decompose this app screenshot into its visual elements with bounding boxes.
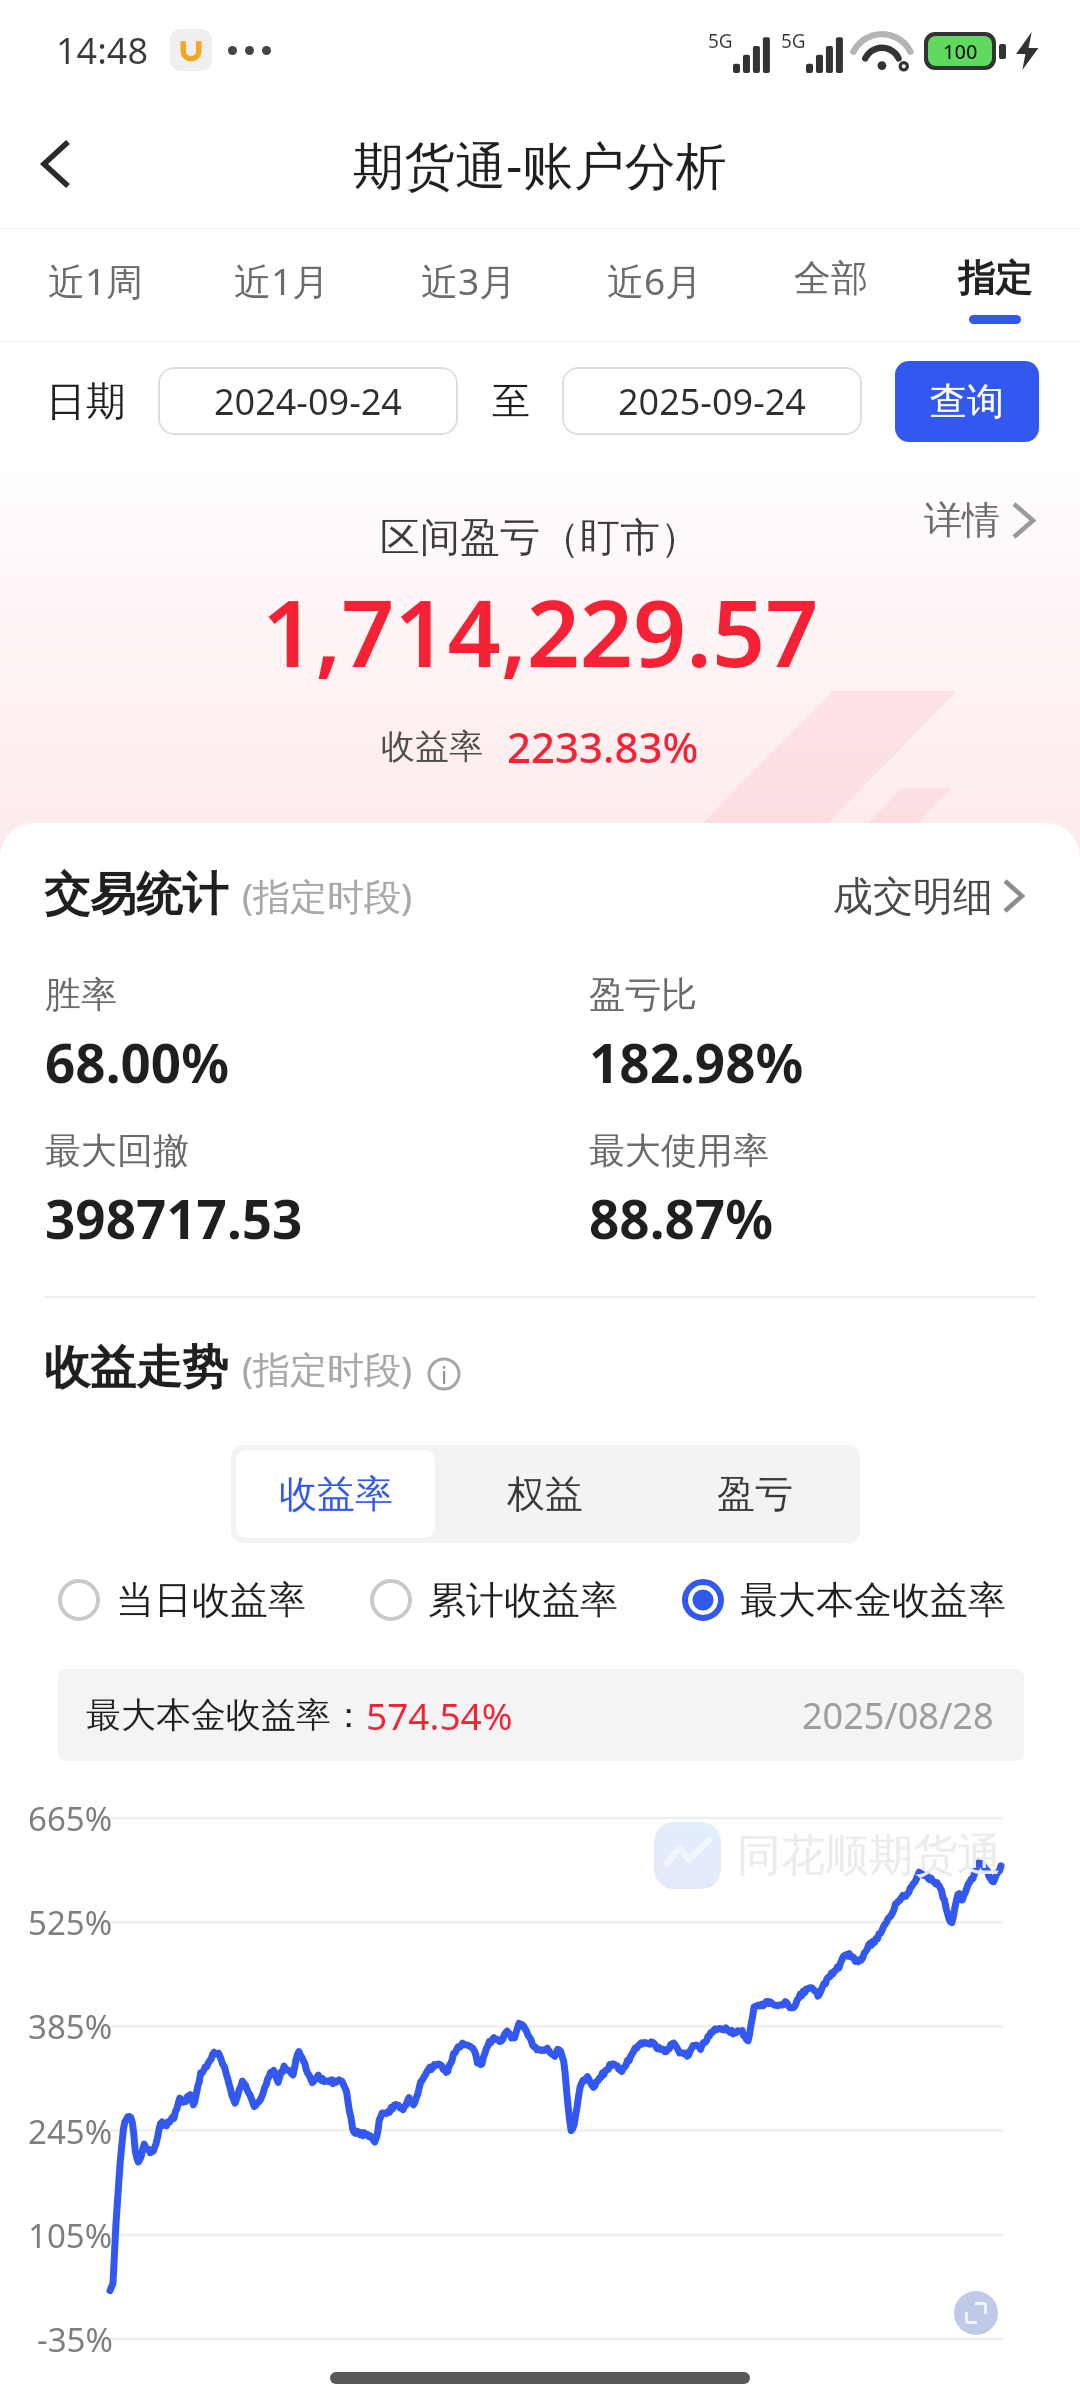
staticText: 权益 [507, 1470, 583, 1518]
staticText: 2025-09-24 [618, 377, 806, 426]
button[interactable]: 权益 [445, 1450, 645, 1538]
staticText: 2024-09-24 [214, 377, 402, 426]
staticText: 查询 [930, 378, 1004, 425]
staticText: 100 [943, 38, 978, 65]
staticText: 5G [781, 28, 806, 54]
staticText: 105% [28, 2213, 113, 2258]
staticText: 收益率 [381, 725, 483, 768]
button[interactable]: 近1周 [48, 229, 144, 341]
button[interactable]: 查询 [895, 361, 1039, 442]
button[interactable]: 最大本金收益率 [682, 1576, 1006, 1624]
staticText: 最大本金收益率： [86, 1693, 366, 1737]
staticText: 5G [708, 28, 733, 54]
staticText: 2233.83% [507, 718, 699, 775]
staticText: 盈亏 [717, 1470, 793, 1518]
staticText: 近1周 [48, 255, 144, 306]
staticText: 近1月 [234, 255, 330, 306]
button[interactable]: 累计收益率 [370, 1576, 618, 1624]
button[interactable]: 收益率 [236, 1450, 435, 1538]
button[interactable]: 当日收益率 [58, 1576, 306, 1624]
staticText: 当日收益率 [116, 1576, 306, 1624]
staticText: 胜率 [45, 972, 117, 1017]
staticText: 期货通-账户分析 [353, 129, 727, 199]
staticText: 至 [492, 377, 530, 425]
button[interactable]: 2025-09-24 [562, 367, 862, 435]
button[interactable]: 成交明细 [821, 865, 1022, 924]
staticText: 525% [28, 1900, 113, 1945]
staticText: 最大本金收益率 [740, 1576, 1006, 1624]
staticText: 指定 [958, 255, 1032, 302]
staticText: 收益率 [279, 1470, 393, 1518]
button[interactable]: Fullscreen [954, 2291, 998, 2335]
button[interactable]: 2024-09-24 [158, 367, 458, 435]
staticText: 1,714,229.57 [262, 568, 819, 695]
staticText: 14:48 [56, 26, 149, 75]
staticText: 盈亏比 [589, 972, 697, 1017]
staticText: 近3月 [421, 255, 517, 306]
staticText: 2025/08/28 [802, 1691, 994, 1740]
staticText: 区间盈亏（盯市） [380, 512, 700, 562]
staticText: 近6月 [607, 255, 703, 306]
staticText: 收益走势 [44, 1339, 228, 1397]
staticText: 全部 [794, 255, 868, 302]
staticText: 182.98% [589, 1026, 804, 1098]
staticText: (指定时段) [242, 870, 413, 921]
staticText: 68.00% [45, 1026, 229, 1098]
staticText: 574.54% [366, 1690, 513, 1740]
button[interactable]: 近3月 [421, 229, 517, 341]
button[interactable]: 详情 [908, 480, 1049, 560]
button[interactable]: 近1月 [234, 229, 330, 341]
staticText: 交易统计 [44, 866, 228, 924]
staticText: 日期 [46, 376, 126, 426]
staticText: i [441, 1358, 448, 1391]
button[interactable]: 盈亏 [655, 1450, 855, 1538]
staticText: 245% [28, 2109, 113, 2154]
button[interactable]: 近6月 [607, 229, 703, 341]
staticText: 665% [28, 1796, 113, 1841]
staticText: 最大回撤 [45, 1128, 189, 1173]
staticText: -35% [37, 2317, 113, 2362]
staticText: 398717.53 [45, 1182, 303, 1254]
staticText: 最大使用率 [589, 1128, 769, 1173]
staticText: 详情 [924, 496, 1000, 544]
button[interactable]: 全部 [794, 229, 868, 341]
staticText: (指定时段) [242, 1343, 413, 1394]
staticText: 累计收益率 [428, 1576, 618, 1624]
staticText: 88.87% [589, 1182, 773, 1254]
button[interactable]: 指定 [958, 229, 1032, 341]
staticText: 成交明细 [833, 871, 993, 921]
staticText: 385% [28, 2004, 113, 2049]
button[interactable]: Back [0, 100, 112, 228]
staticText: 同花顺期货通 [737, 1828, 1001, 1883]
